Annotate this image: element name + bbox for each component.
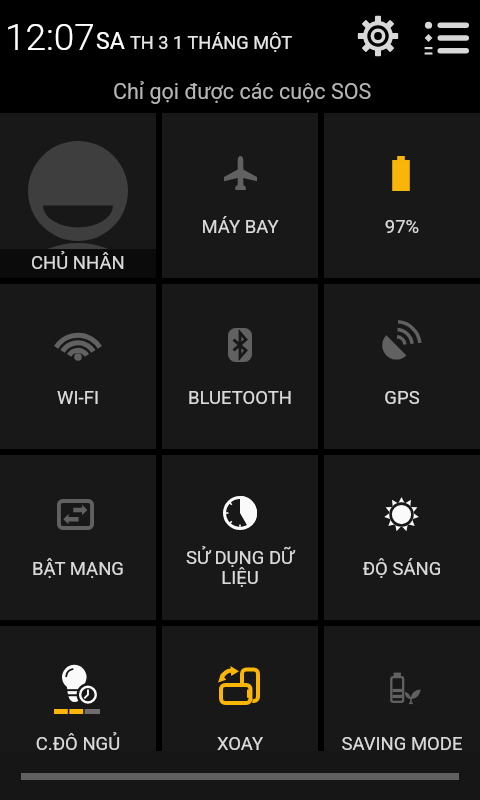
staticText: 12:07 xyxy=(5,16,95,59)
button[interactable]: XOAY xyxy=(162,626,318,751)
button[interactable]: Settings xyxy=(355,13,401,59)
button[interactable]: WI-FI xyxy=(0,284,156,449)
staticText: CHỦ NHÂN xyxy=(31,252,125,274)
staticText: C.ĐỘ NGỦ xyxy=(0,733,156,755)
staticText: SAVING MODE xyxy=(324,733,480,755)
button[interactable]: MÁY BAY xyxy=(162,113,318,278)
button[interactable]: BẬT MẠNG xyxy=(0,455,156,620)
staticText: WI-FI xyxy=(0,387,156,409)
staticText: Chỉ gọi được các cuộc SOS xyxy=(113,79,372,104)
staticText: BLUETOOTH xyxy=(162,387,318,409)
staticText: 97% xyxy=(324,216,480,238)
staticText: XOAY xyxy=(162,733,318,755)
button[interactable]: Notification list xyxy=(422,14,470,62)
button[interactable]: SỬ DỤNG DỮ LIỆU xyxy=(162,455,318,620)
staticText: MÁY BAY xyxy=(162,216,318,238)
staticText: TH 3 1 THÁNG MỘT xyxy=(130,32,293,53)
button[interactable]: ĐỘ SÁNG xyxy=(324,455,480,620)
button[interactable]: 97% xyxy=(324,113,480,278)
button[interactable]: CHỦ NHÂN xyxy=(0,113,156,278)
button[interactable]: SAVING MODE xyxy=(324,626,480,751)
staticText: SỬ DỤNG DỮ LIỆU xyxy=(162,547,318,588)
staticText: SA xyxy=(96,28,125,55)
staticText: GPS xyxy=(324,387,480,409)
staticText: BẬT MẠNG xyxy=(0,558,156,580)
button[interactable]: BLUETOOTH xyxy=(162,284,318,449)
button[interactable]: C.ĐỘ NGỦ xyxy=(0,626,156,751)
button[interactable]: GPS xyxy=(324,284,480,449)
staticText: ĐỘ SÁNG xyxy=(324,558,480,580)
